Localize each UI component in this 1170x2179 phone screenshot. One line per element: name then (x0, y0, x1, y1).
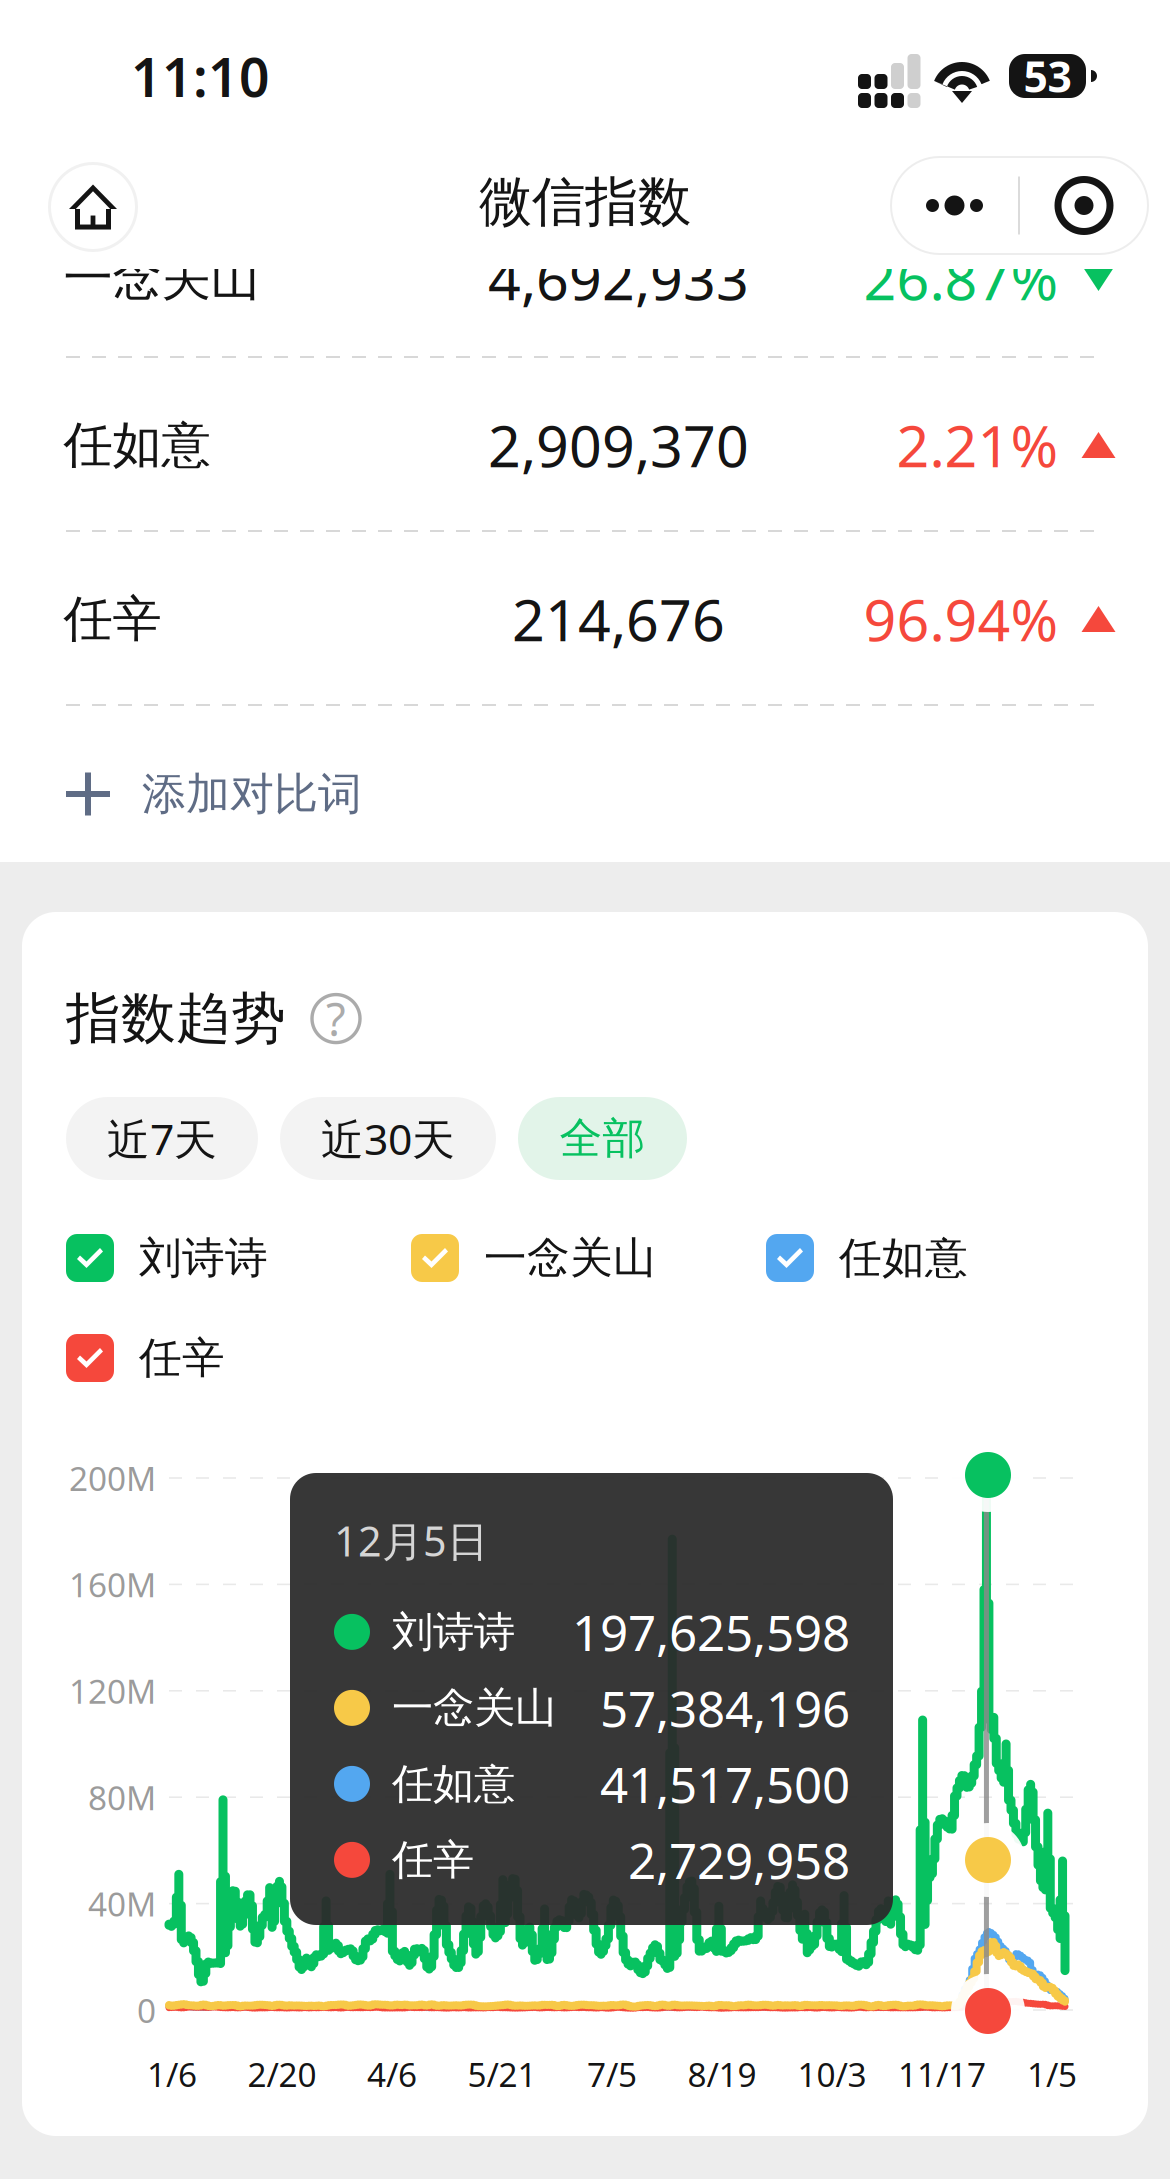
staticText: 任如意 (63, 415, 210, 475)
button[interactable]: 任辛 (66, 1332, 225, 1384)
button[interactable]: More (891, 157, 1018, 254)
staticText: 10/3 (797, 2052, 866, 2096)
staticText: 一念关山 (63, 248, 259, 308)
button[interactable]: Help (310, 993, 362, 1045)
staticText: 2/20 (247, 2052, 316, 2096)
staticText: 57,384,196 (600, 1675, 850, 1741)
staticText: 11:10 (131, 41, 270, 112)
button[interactable]: Home (49, 163, 137, 251)
staticText: 53 (1023, 48, 1071, 104)
staticText: 任辛 (392, 1834, 474, 1885)
staticText: 刘诗诗 (139, 1232, 268, 1284)
staticText: 微信指数 (479, 169, 691, 235)
staticText: 任如意 (839, 1232, 968, 1284)
button[interactable]: 刘诗诗 (66, 1232, 268, 1284)
staticText: 96.94% (863, 581, 1058, 657)
button[interactable]: 近7天 (66, 1097, 258, 1180)
staticText: ? (326, 988, 346, 1049)
staticText: 2,729,958 (628, 1827, 850, 1893)
staticText: 刘诗诗 (392, 1606, 515, 1657)
staticText: 一念关山 (392, 1682, 556, 1733)
staticText: 8/19 (687, 2052, 756, 2096)
staticText: 任辛 (139, 1332, 225, 1384)
staticText: 80M (88, 1775, 156, 1819)
staticText: 200M (69, 1456, 156, 1500)
button[interactable]: 添加对比词 (66, 758, 406, 830)
staticText: 近30天 (321, 1110, 455, 1167)
staticText: 1/6 (147, 2052, 197, 2096)
staticText: 197,625,598 (572, 1599, 850, 1665)
staticText: 近7天 (107, 1110, 217, 1167)
staticText: 指数趋势 (66, 985, 286, 1052)
staticText: 添加对比词 (142, 767, 362, 821)
staticText: 160M (69, 1562, 156, 1607)
staticText: 一念关山 (484, 1232, 656, 1284)
staticText: 任如意 (392, 1758, 515, 1809)
staticText: 任辛 (63, 589, 161, 649)
staticText: 11/17 (898, 2052, 986, 2096)
button[interactable]: 任如意 (766, 1232, 968, 1284)
staticText: 4/6 (367, 2052, 417, 2096)
staticText: 40M (88, 1881, 156, 1926)
button[interactable]: 近30天 (280, 1097, 496, 1180)
staticText: 4,692,933 (488, 240, 749, 316)
button[interactable]: 一念关山 (411, 1232, 656, 1284)
button[interactable]: 全部 (518, 1097, 687, 1180)
staticText: 214,676 (512, 581, 725, 657)
staticText: 2,909,370 (488, 407, 749, 483)
staticText: 7/5 (587, 2052, 637, 2096)
staticText: 12月5日 (334, 1513, 488, 1568)
staticText: 120M (69, 1669, 156, 1713)
staticText: 26.87% (863, 240, 1058, 316)
staticText: 41,517,500 (600, 1751, 850, 1817)
button[interactable]: Close (1020, 157, 1148, 254)
staticText: 5/21 (467, 2052, 536, 2096)
staticText: 0 (137, 1988, 156, 2032)
staticText: 全部 (559, 1112, 645, 1165)
staticText: 1/5 (1027, 2052, 1077, 2096)
staticText: 2.21% (896, 407, 1058, 483)
